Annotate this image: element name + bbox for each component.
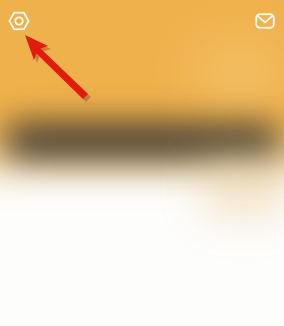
button[interactable]: Settings [4, 6, 34, 36]
button[interactable]: Messages [250, 6, 280, 36]
